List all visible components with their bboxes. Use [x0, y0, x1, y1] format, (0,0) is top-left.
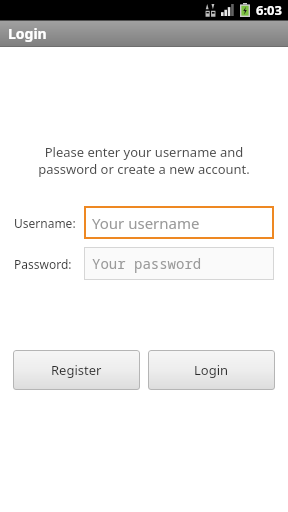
staticText: Your password — [92, 254, 202, 273]
button[interactable]: Login — [148, 350, 275, 390]
staticText: Your username — [92, 213, 200, 233]
staticText: Please enter your username and password … — [18, 143, 270, 178]
staticText: Password: — [14, 256, 84, 272]
staticText: Username: — [14, 215, 84, 231]
button[interactable]: Your password — [84, 247, 274, 280]
staticText: Login — [8, 24, 47, 43]
staticText: 6:03 — [256, 1, 282, 19]
staticText: Register — [51, 361, 102, 379]
button[interactable]: Your username — [84, 206, 274, 239]
button[interactable]: Register — [13, 350, 140, 390]
staticText: Login — [194, 361, 229, 379]
